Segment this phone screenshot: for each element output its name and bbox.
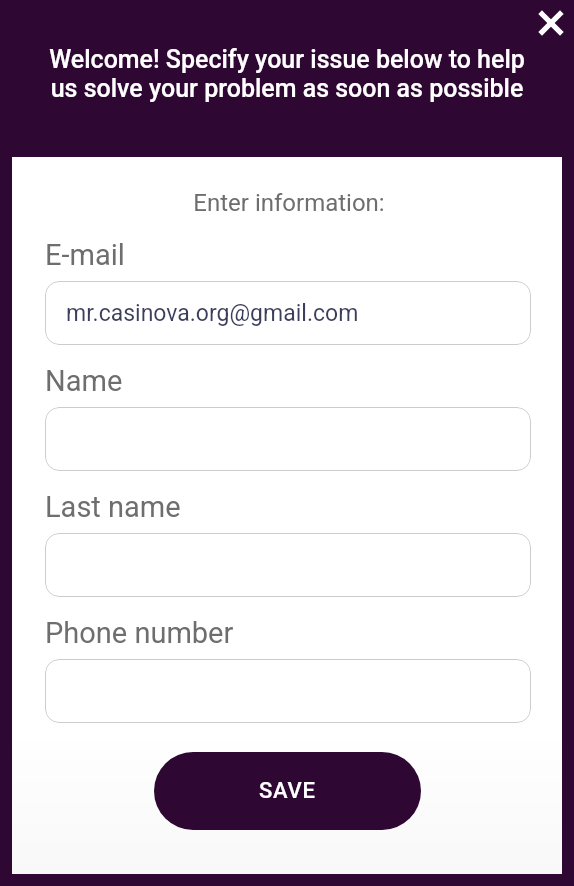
button[interactable]: SAVE	[154, 752, 421, 830]
button[interactable]: Last name	[45, 533, 531, 597]
staticText: Phone number	[45, 616, 234, 650]
staticText: mr.casinova.org@gmail.com	[66, 300, 359, 327]
button[interactable]: Phone number	[45, 659, 531, 723]
staticText: Name	[45, 364, 123, 398]
button[interactable]: E-mail	[45, 281, 531, 345]
staticText: SAVE	[259, 778, 316, 804]
staticText: Last name	[45, 490, 181, 524]
staticText: Welcome! Specify your issue below to hel…	[0, 45, 574, 103]
staticText: E-mail	[45, 238, 125, 272]
button[interactable]: Close	[528, 0, 574, 46]
button[interactable]: Name	[45, 407, 531, 471]
staticText: Enter information:	[14, 189, 564, 217]
